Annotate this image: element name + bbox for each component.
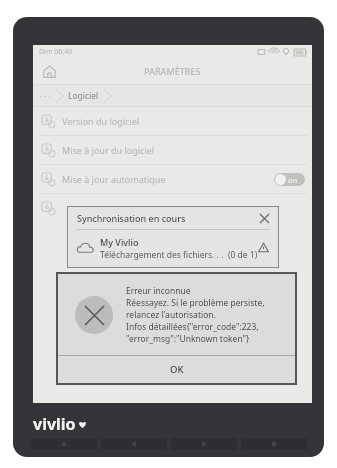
staticText: Erreur inconnue — [126, 285, 191, 297]
button[interactable] — [33, 194, 312, 222]
staticText: PARAMÈTRES — [144, 65, 201, 77]
button[interactable]: on — [274, 173, 305, 186]
staticText: on — [288, 175, 298, 185]
staticText: relancez l'autorisation. — [126, 309, 216, 321]
staticText: Synchronisation en cours — [77, 212, 186, 224]
button[interactable]: Menu — [241, 438, 307, 450]
button[interactable]: OK — [58, 356, 295, 383]
button[interactable]: Close — [257, 211, 271, 225]
staticText: vivlio — [33, 413, 76, 435]
staticText: Mise à jour automatique — [62, 173, 166, 185]
staticText: Dim 06:40 — [39, 47, 73, 57]
staticText: Mise à jour du logiciel — [62, 144, 155, 156]
staticText: OK — [170, 363, 184, 376]
staticText: Téléchargement des fichiers. . . — [100, 249, 224, 261]
button[interactable]: Mise à jour du logiciel — [33, 136, 312, 164]
staticText: My Vivlio — [100, 236, 139, 248]
staticText: Version du logiciel — [62, 115, 140, 127]
staticText: "error_msg":"Unknown token"} — [126, 333, 250, 345]
button[interactable]: Mise à jour automatique — [33, 165, 312, 193]
button[interactable]: Logiciel — [68, 90, 99, 102]
staticText: Logiciel — [68, 90, 99, 102]
button[interactable]: Version du logiciel — [33, 107, 312, 135]
button[interactable]: Home — [39, 61, 59, 81]
staticText: (0 de 1) — [228, 249, 258, 261]
button[interactable]: Previous page — [101, 438, 167, 450]
staticText: Réessayez. Si le problème persiste, — [126, 297, 265, 309]
staticText: Infos détaillées{"error_code":223, — [126, 321, 259, 333]
staticText: · · · — [40, 91, 51, 102]
button[interactable]: · · · — [40, 91, 51, 102]
